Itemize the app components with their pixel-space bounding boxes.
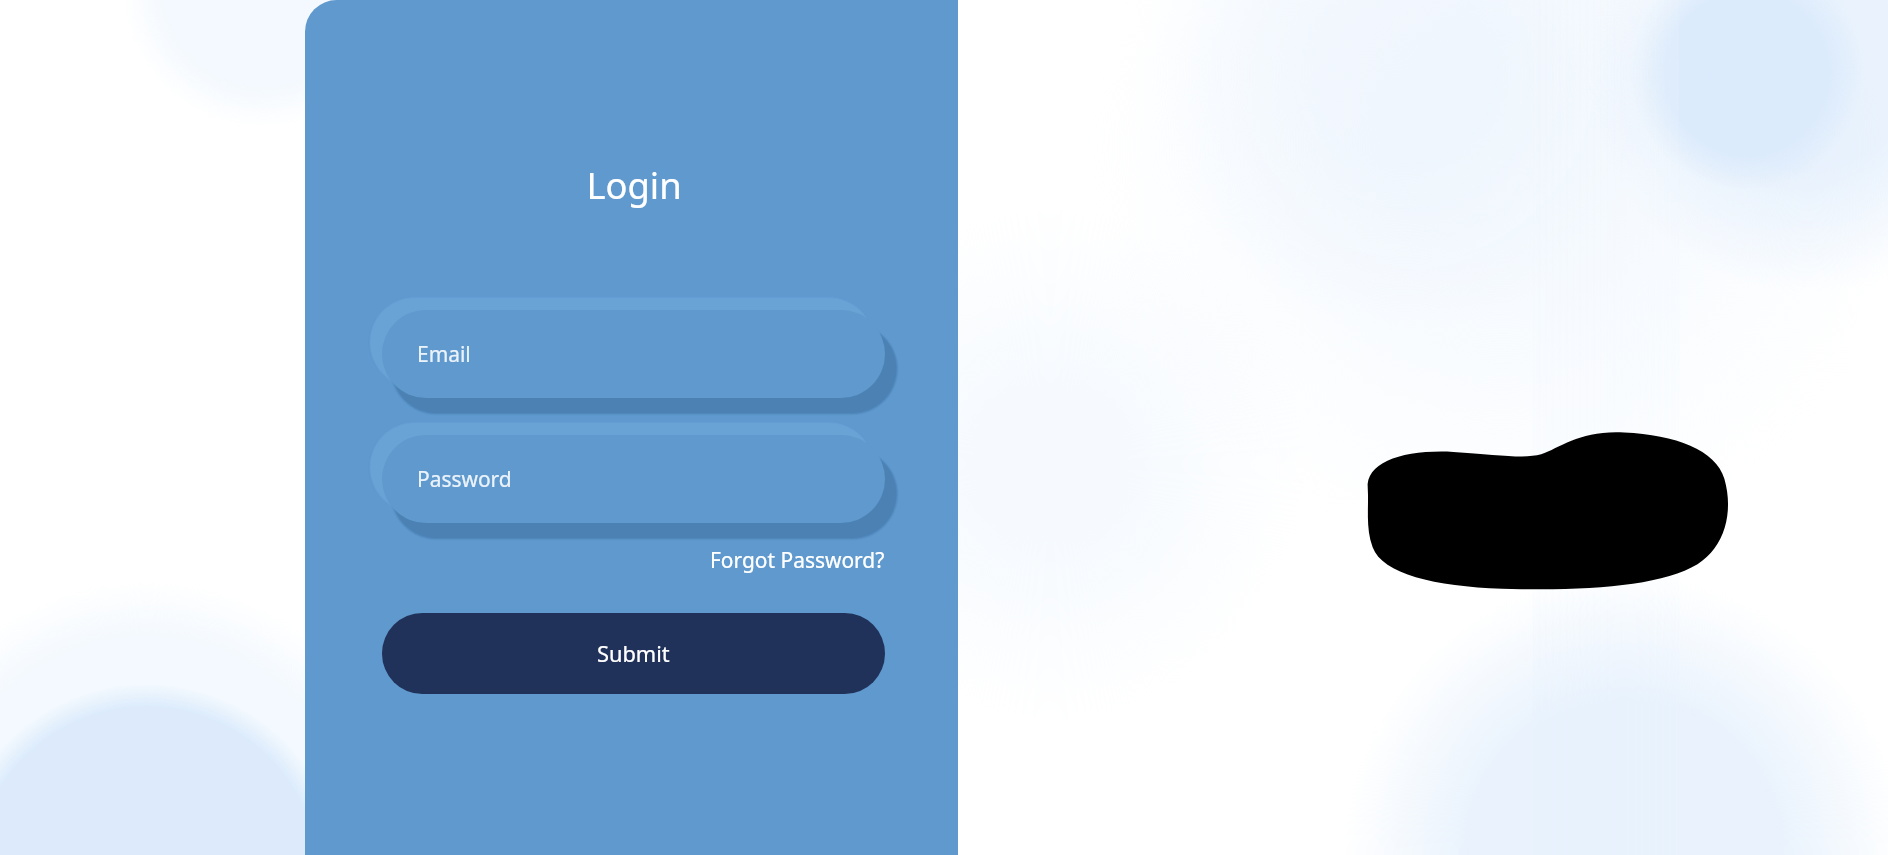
button[interactable]: Submit [382,613,885,694]
staticText: Login [586,160,682,209]
staticText: Email [417,340,471,369]
staticText: Forgot Password? [710,546,885,575]
button[interactable]: Email [382,310,885,398]
button[interactable]: Forgot Password? [382,537,885,583]
button[interactable]: Password [382,435,885,523]
staticText: Password [417,465,512,494]
staticText: Submit [597,639,670,669]
